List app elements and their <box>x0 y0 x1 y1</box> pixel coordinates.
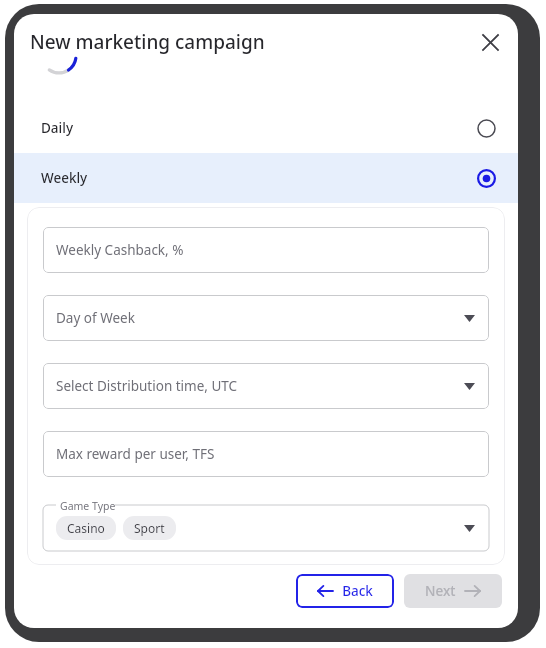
staticText: Next <box>425 582 456 600</box>
staticText: Max reward per user, TFS <box>56 445 215 463</box>
staticText: Back <box>342 582 373 600</box>
staticText: New marketing campaign <box>30 29 265 55</box>
staticText: Day of Week <box>56 309 135 327</box>
staticText: Casino <box>67 520 105 536</box>
button[interactable]: Select Distribution time, UTC <box>43 363 489 409</box>
staticText: Weekly Cashback, % <box>56 241 184 259</box>
button[interactable]: Back <box>296 574 394 608</box>
staticText: Sport <box>134 520 165 536</box>
staticText: Select Distribution time, UTC <box>56 377 238 395</box>
staticText: Daily <box>41 119 74 137</box>
button[interactable]: Next <box>404 574 502 608</box>
staticText: Game Type <box>60 499 116 513</box>
button[interactable]: Casino <box>43 505 489 551</box>
button[interactable]: Close <box>470 22 510 62</box>
button[interactable]: Day of Week <box>43 295 489 341</box>
button[interactable]: Daily <box>14 103 518 153</box>
button[interactable]: Sport <box>123 516 176 540</box>
staticText: Weekly <box>41 169 88 187</box>
button[interactable]: Weekly Cashback, % <box>43 227 489 273</box>
button[interactable]: Casino <box>56 516 116 540</box>
button[interactable]: Max reward per user, TFS <box>43 431 489 477</box>
button[interactable]: Weekly <box>14 153 518 203</box>
